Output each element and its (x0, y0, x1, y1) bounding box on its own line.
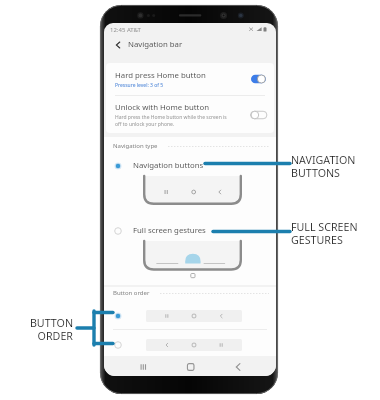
staticText: Pressure level: 3 of 5 (115, 82, 164, 89)
button[interactable]: Unlock with Home button (106, 96, 274, 133)
button[interactable]: Home (177, 356, 205, 376)
button[interactable]: Back (111, 38, 124, 51)
staticText: 12:45 AT&T (110, 26, 141, 34)
button[interactable]: Navigation buttons (104, 157, 276, 174)
button[interactable]: Hard press Home button toggle (250, 74, 267, 84)
staticText: Navigation type (113, 142, 158, 150)
staticText: Hard press Home button (115, 70, 206, 81)
staticText: NAVIGATION BUTTONS (291, 153, 356, 180)
button[interactable]: Back (224, 356, 252, 376)
staticText: Full screen gestures (133, 225, 206, 236)
button[interactable]: Hard press Home button (106, 63, 274, 95)
button[interactable]: Recents (129, 356, 157, 376)
button[interactable] (104, 336, 276, 354)
staticText: Hard press the Home button while the scr… (115, 114, 227, 128)
staticText: Unlock with Home button (115, 102, 209, 113)
staticText: Navigation bar (128, 39, 183, 50)
staticText: FULL SCREEN GESTURES (291, 220, 358, 247)
button[interactable]: Unlock with Home button toggle (250, 110, 267, 120)
staticText: BUTTON ORDER (29, 316, 73, 343)
button[interactable]: Full screen gestures (104, 222, 276, 239)
staticText: Button order (113, 289, 150, 297)
button[interactable] (104, 307, 276, 325)
staticText: Navigation buttons (133, 160, 204, 171)
